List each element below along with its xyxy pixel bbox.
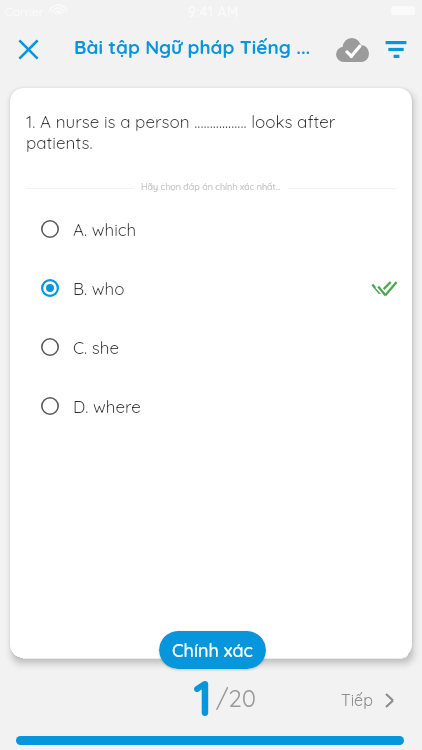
staticText: B. who (73, 278, 125, 299)
staticText: Bài tập Ngữ pháp Tiếng ... (74, 35, 311, 59)
button[interactable]: Saved offline (332, 27, 373, 72)
staticText: 1. A nurse is a person .................… (26, 111, 346, 153)
staticText: Tiếp (341, 690, 373, 710)
staticText: Chính xác (172, 639, 253, 662)
staticText: A. which (73, 219, 137, 240)
button[interactable]: Tiếp (338, 686, 397, 714)
button[interactable]: Close (6, 27, 51, 72)
staticText: 1 (193, 666, 213, 729)
button[interactable]: Filter (375, 27, 416, 72)
button[interactable]: A. which (10, 200, 412, 258)
staticText: C. she (73, 337, 120, 358)
button[interactable]: D. where (10, 377, 412, 435)
button[interactable]: C. she (10, 318, 412, 376)
staticText: /20 (216, 683, 257, 713)
button[interactable]: Chính xác (159, 631, 266, 669)
button[interactable]: B. who (10, 259, 412, 317)
staticText: Hãy chọn đáp án chính xác nhất... (141, 181, 281, 192)
staticText: D. where (73, 396, 141, 417)
